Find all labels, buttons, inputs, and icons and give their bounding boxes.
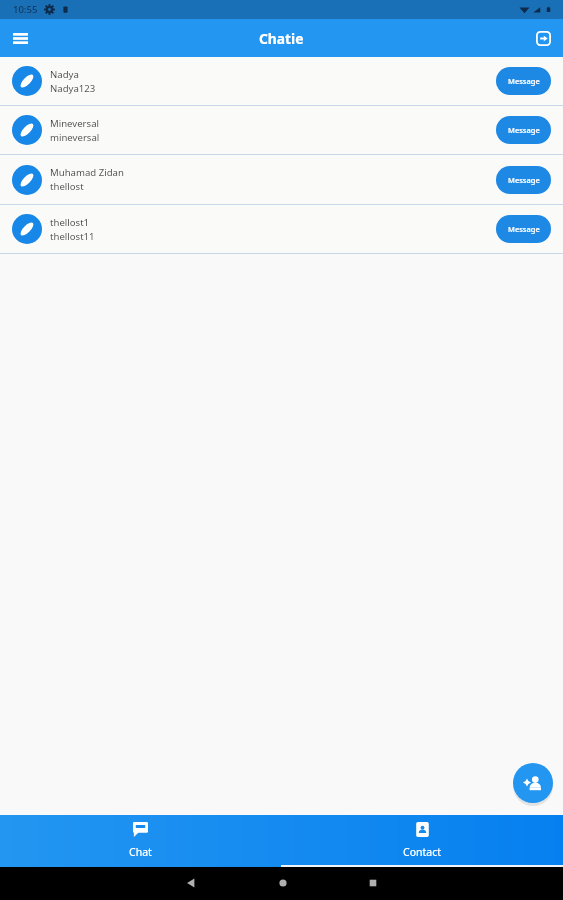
button[interactable]: Message bbox=[496, 166, 551, 194]
button[interactable]: Recents bbox=[367, 877, 379, 889]
button[interactable]: Nadya bbox=[0, 57, 563, 106]
button[interactable]: Chat bbox=[0, 815, 281, 867]
staticText: Message bbox=[508, 224, 540, 234]
staticText: mineversal bbox=[50, 131, 100, 144]
staticText: 10:55 bbox=[13, 3, 38, 16]
button[interactable]: Mineversal bbox=[0, 106, 563, 155]
button[interactable]: Message bbox=[496, 116, 551, 144]
button[interactable]: Menu bbox=[8, 26, 32, 50]
staticText: Chatie bbox=[259, 29, 304, 48]
staticText: thellost11 bbox=[50, 230, 95, 243]
staticText: thellost1 bbox=[50, 216, 90, 229]
button[interactable]: Logout bbox=[531, 26, 555, 50]
staticText: Muhamad Zidan bbox=[50, 166, 124, 179]
staticText: thellost bbox=[50, 180, 84, 193]
button[interactable]: Contact bbox=[281, 815, 563, 867]
staticText: Chat bbox=[129, 845, 152, 859]
staticText: Message bbox=[508, 76, 540, 86]
button[interactable]: Message bbox=[496, 215, 551, 243]
staticText: Message bbox=[508, 125, 540, 135]
staticText: Mineversal bbox=[50, 117, 100, 130]
button[interactable]: Back bbox=[185, 877, 197, 889]
button[interactable]: Home bbox=[277, 877, 289, 889]
staticText: Message bbox=[508, 175, 540, 185]
staticText: Nadya bbox=[50, 68, 79, 81]
staticText: Nadya123 bbox=[50, 82, 96, 95]
button[interactable]: Message bbox=[496, 67, 551, 95]
button[interactable]: Muhamad Zidan bbox=[0, 155, 563, 205]
button[interactable]: Add contact bbox=[513, 763, 553, 803]
button[interactable]: thellost1 bbox=[0, 205, 563, 254]
staticText: Contact bbox=[403, 845, 441, 859]
